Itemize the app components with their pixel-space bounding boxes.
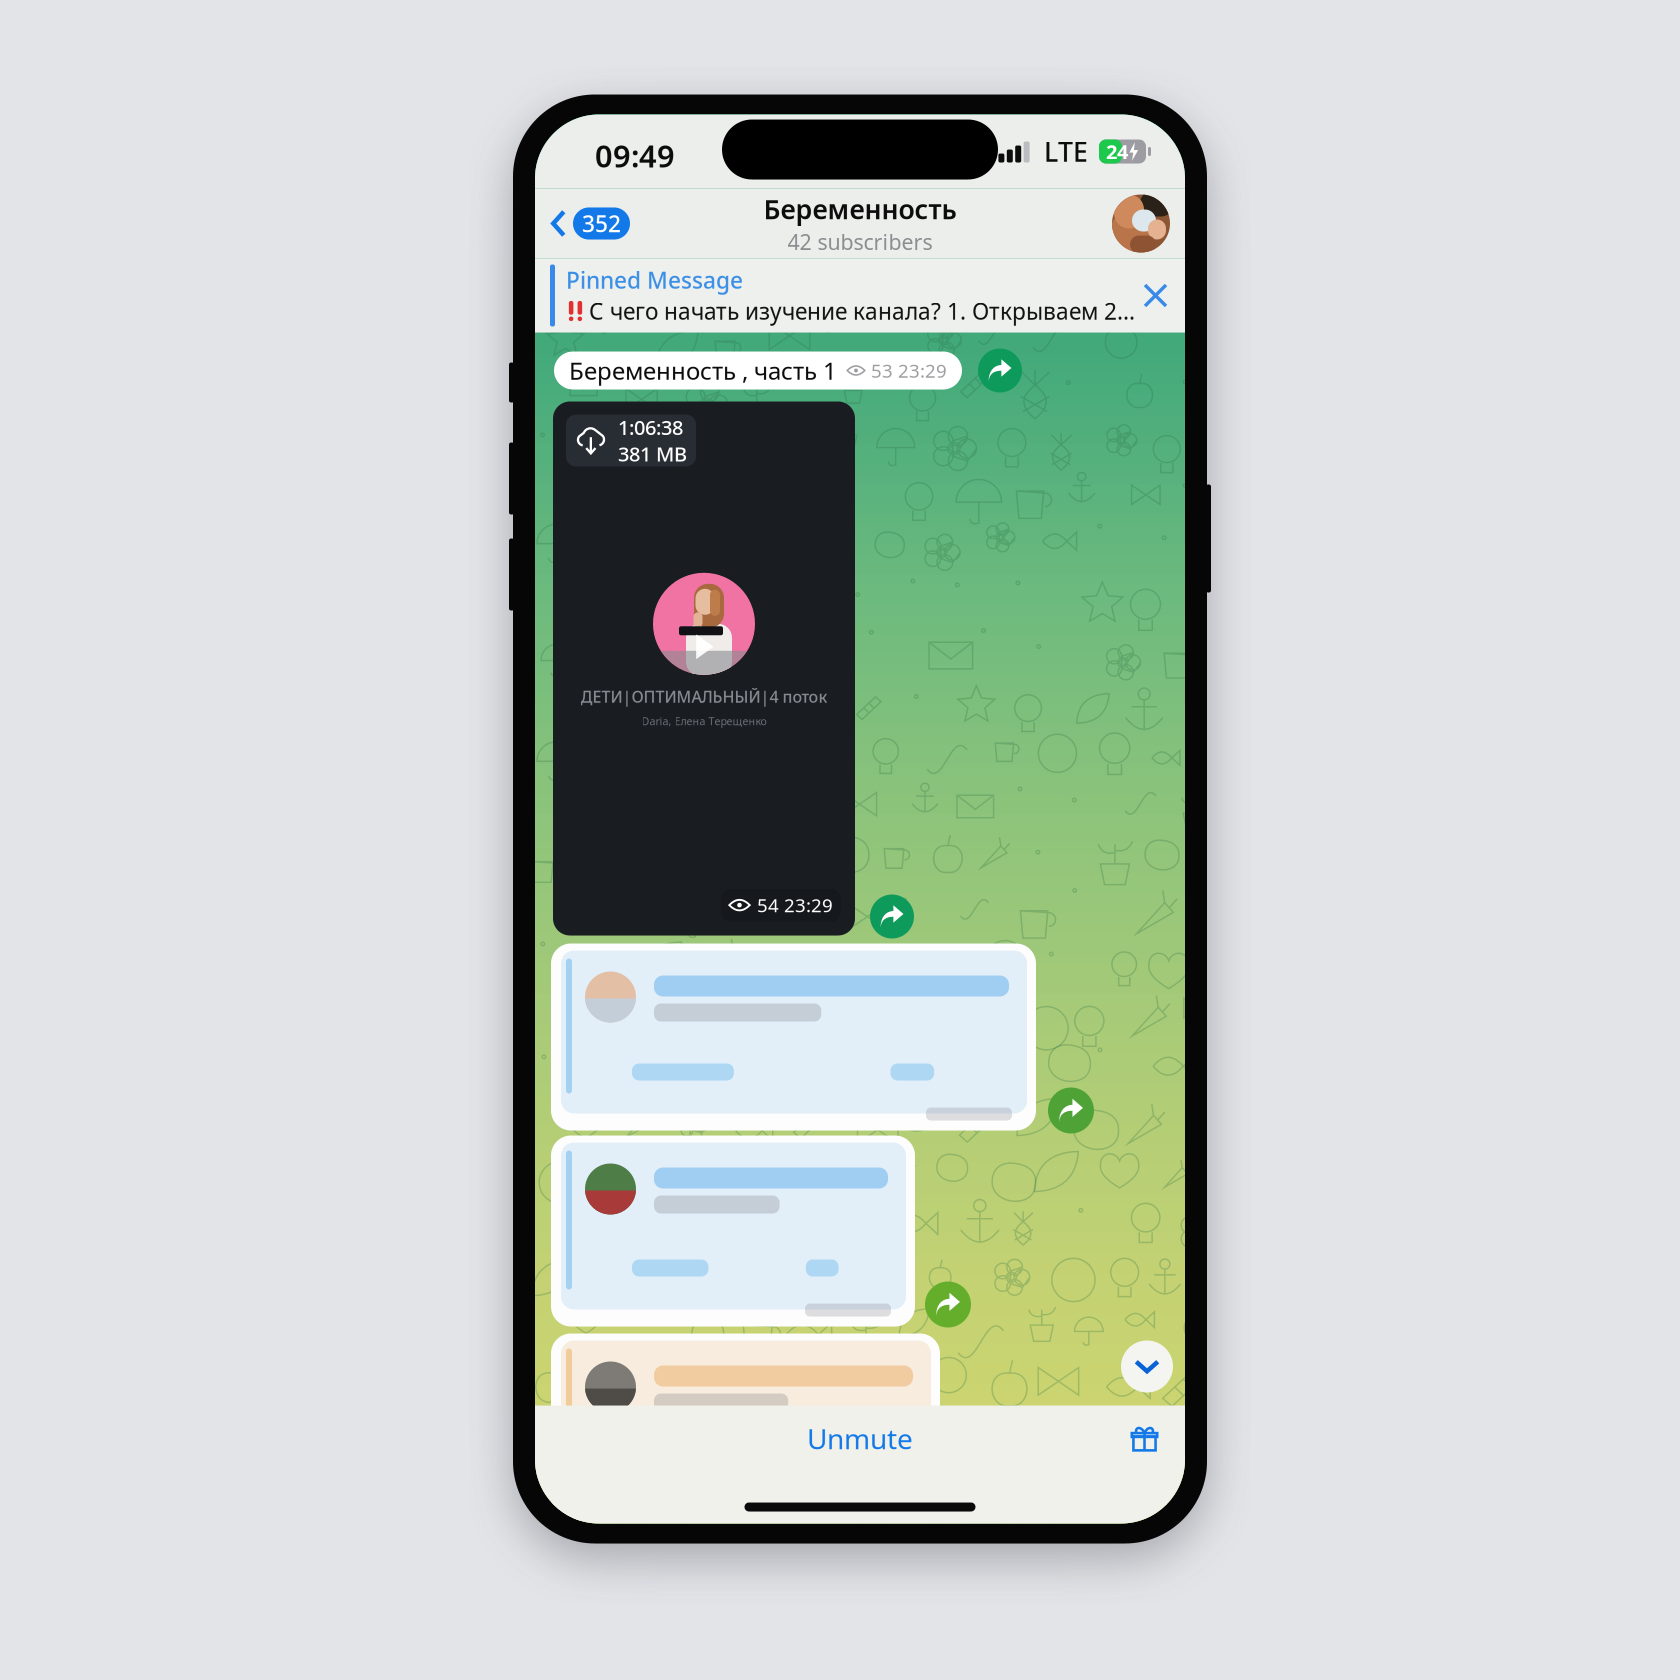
- staticText: 1:06:38: [618, 414, 683, 440]
- button[interactable]: Scroll to bottom: [1121, 1340, 1173, 1392]
- button[interactable]: Dismiss pinned message: [1132, 267, 1179, 324]
- staticText: 53 23:29: [871, 358, 947, 383]
- staticText: 54 23:29: [757, 893, 833, 917]
- staticText: 381 MB: [618, 440, 687, 467]
- button[interactable]: Forward: [925, 1281, 971, 1327]
- button[interactable]: Channel profile: [1097, 188, 1185, 258]
- button[interactable]: Pinned Message: [535, 258, 1185, 332]
- staticText: 352: [582, 208, 621, 238]
- staticText: 09:49: [595, 135, 675, 176]
- staticText: Unmute: [807, 1420, 913, 1457]
- button[interactable]: 352: [535, 197, 646, 249]
- button[interactable]: Forward: [1048, 1087, 1094, 1133]
- staticText: С чего начать изучение канала? 1. Открыв…: [589, 296, 1135, 326]
- staticText: Daria, Елена Терещенко: [641, 714, 766, 728]
- staticText: Беременность: [763, 191, 956, 226]
- button[interactable]: Unmute: [610, 1405, 1110, 1471]
- button[interactable]: Forward: [978, 348, 1022, 392]
- staticText: Pinned Message: [566, 265, 743, 295]
- staticText: ДЕТИ|ОПТИМАЛЬНЫЙ|4 поток: [580, 686, 827, 707]
- button[interactable]: Send a gift: [1116, 1407, 1173, 1470]
- staticText: 42 subscribers: [787, 227, 932, 256]
- staticText: 24: [1106, 138, 1128, 165]
- button[interactable]: Forward: [870, 894, 914, 938]
- staticText: LTE: [1044, 134, 1088, 169]
- staticText: Беременность , часть 1: [569, 355, 837, 386]
